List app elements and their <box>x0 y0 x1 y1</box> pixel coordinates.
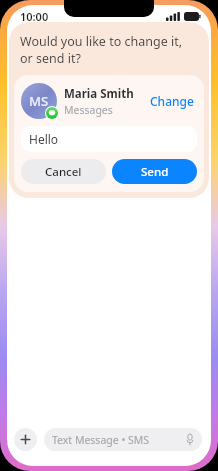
button[interactable]: Send <box>112 159 197 184</box>
staticText: Hello <box>29 131 59 147</box>
staticText: 10:00 <box>20 9 49 24</box>
staticText: Maria Smith <box>64 86 134 102</box>
staticText: Would you like to change it, or send it? <box>20 33 193 66</box>
staticText: Send <box>141 164 169 180</box>
button[interactable]: Change <box>147 90 197 112</box>
button[interactable]: Add attachment <box>14 428 37 451</box>
staticText: Change <box>150 93 194 109</box>
staticText: Text Message • SMS <box>52 433 186 447</box>
staticText: Cancel <box>45 164 82 180</box>
button[interactable]: Hello <box>21 126 197 152</box>
button[interactable]: Cancel <box>21 159 106 184</box>
staticText: MS <box>29 92 49 110</box>
staticText: Messages <box>64 103 113 117</box>
button[interactable]: Text Message • SMS <box>44 428 202 451</box>
